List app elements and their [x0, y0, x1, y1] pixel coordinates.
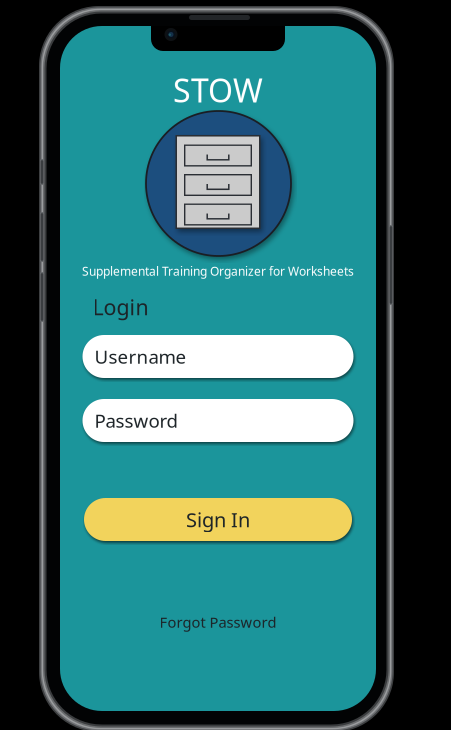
- staticText: STOW: [173, 69, 263, 111]
- button[interactable]: Sign In: [84, 498, 352, 541]
- staticText: Login: [92, 293, 148, 321]
- staticText: Password: [94, 408, 177, 433]
- button[interactable]: Forgot Password: [128, 613, 308, 631]
- staticText: Forgot Password: [159, 612, 276, 632]
- button[interactable]: Password: [82, 399, 353, 442]
- staticText: Supplemental Training Organizer for Work…: [82, 263, 354, 279]
- staticText: Sign In: [186, 506, 250, 533]
- staticText: Username: [94, 344, 186, 369]
- button[interactable]: Username: [82, 335, 353, 378]
